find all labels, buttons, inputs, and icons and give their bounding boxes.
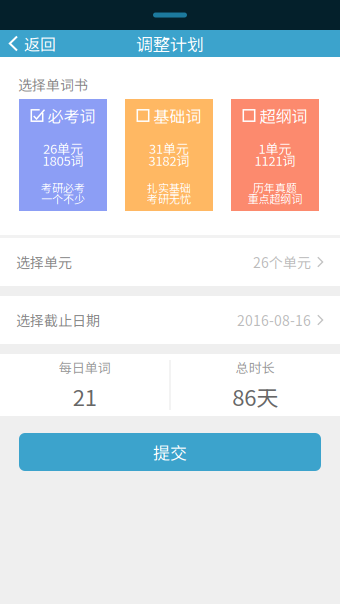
staticText: 选择单元 xyxy=(16,252,72,272)
staticText: 26单元 xyxy=(43,139,83,157)
staticText: 扎实基础 xyxy=(147,179,191,195)
button[interactable]: 必考词 xyxy=(19,99,107,211)
staticText: 86天 xyxy=(232,380,278,412)
button[interactable]: 返回 xyxy=(0,30,66,57)
staticText: 考研必考 xyxy=(41,179,85,195)
staticText: 31单元 xyxy=(149,139,189,157)
staticText: 3182词 xyxy=(148,151,189,169)
staticText: 选择单词书 xyxy=(18,74,88,95)
staticText: 基础词 xyxy=(153,104,201,127)
staticText: 每日单词 xyxy=(59,358,111,376)
staticText: 选择截止日期 xyxy=(16,310,100,330)
staticText: 超纲词 xyxy=(259,104,307,127)
staticText: 一个不少 xyxy=(41,190,85,206)
staticText: 调整计划 xyxy=(136,31,204,56)
staticText: 26个单元 xyxy=(253,252,311,272)
staticText: 1805词 xyxy=(42,151,83,169)
button[interactable]: 选择截止日期 xyxy=(0,296,340,344)
staticText: 总时长 xyxy=(236,358,275,376)
button[interactable]: 提交 xyxy=(19,433,321,471)
staticText: 2016-08-16 xyxy=(237,310,311,330)
staticText: 历年真题 xyxy=(253,179,297,195)
button[interactable]: 超纲词 xyxy=(231,99,319,211)
staticText: 21 xyxy=(73,380,97,412)
staticText: 提交 xyxy=(153,440,187,464)
button[interactable]: 选择单元 xyxy=(0,238,340,286)
button[interactable]: 基础词 xyxy=(125,99,213,211)
staticText: 重点超纲词 xyxy=(247,190,302,206)
staticText: 1单元 xyxy=(258,139,291,157)
staticText: 考研无忧 xyxy=(147,190,191,206)
staticText: 必考词 xyxy=(47,104,95,127)
staticText: 1121词 xyxy=(254,151,295,169)
staticText: 返回 xyxy=(24,32,56,55)
